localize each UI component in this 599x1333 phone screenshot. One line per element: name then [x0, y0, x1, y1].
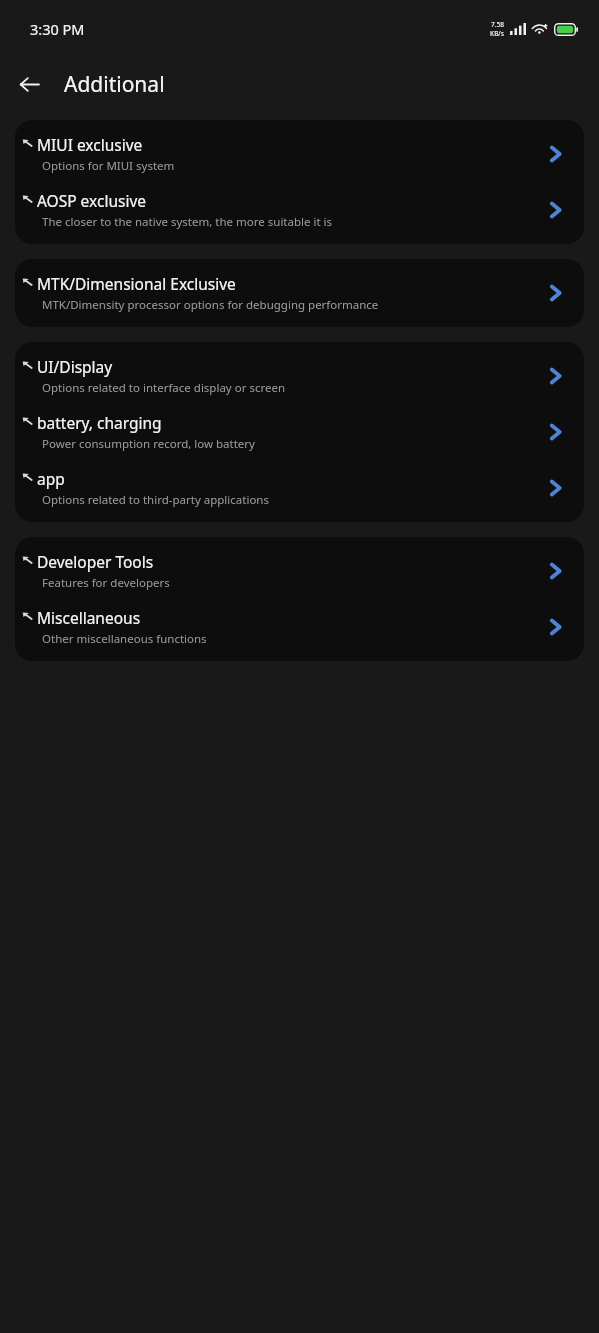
staticText: MTK/Dimensional Exclusive — [37, 273, 236, 294]
button[interactable]: Back — [10, 65, 48, 103]
button[interactable]: battery, charging — [15, 404, 584, 460]
staticText: Miscellaneous — [37, 607, 141, 628]
staticText: Power consumption record, low battery — [42, 436, 255, 452]
staticText: battery, charging — [37, 412, 162, 433]
button[interactable]: Miscellaneous — [15, 599, 584, 655]
staticText: app — [37, 468, 65, 489]
staticText: UI/Display — [37, 356, 113, 377]
button[interactable]: app — [15, 460, 584, 516]
staticText: Other miscellaneous functions — [42, 631, 207, 647]
button[interactable]: MIUI exclusive — [15, 126, 584, 182]
button[interactable]: AOSP exclusive — [15, 182, 584, 238]
staticText: Options related to interface display or … — [42, 380, 286, 396]
staticText: Options related to third-party applicati… — [42, 492, 269, 508]
staticText: Additional — [64, 70, 165, 99]
button[interactable]: MTK/Dimensional Exclusive — [15, 265, 584, 321]
staticText: MIUI exclusive — [37, 134, 143, 155]
staticText: AOSP exclusive — [37, 190, 146, 211]
staticText: 7.58 — [491, 20, 504, 29]
staticText: 3:30 PM — [30, 19, 85, 39]
staticText: Developer Tools — [37, 551, 154, 572]
staticText: KB/s — [490, 29, 504, 38]
button[interactable]: UI/Display — [15, 348, 584, 404]
staticText: MTK/Dimensity processor options for debu… — [42, 297, 379, 313]
staticText: Features for developers — [42, 575, 170, 591]
staticText: Options for MIUI system — [42, 158, 175, 174]
staticText: The closer to the native system, the mor… — [42, 214, 333, 230]
button[interactable]: Developer Tools — [15, 543, 584, 599]
